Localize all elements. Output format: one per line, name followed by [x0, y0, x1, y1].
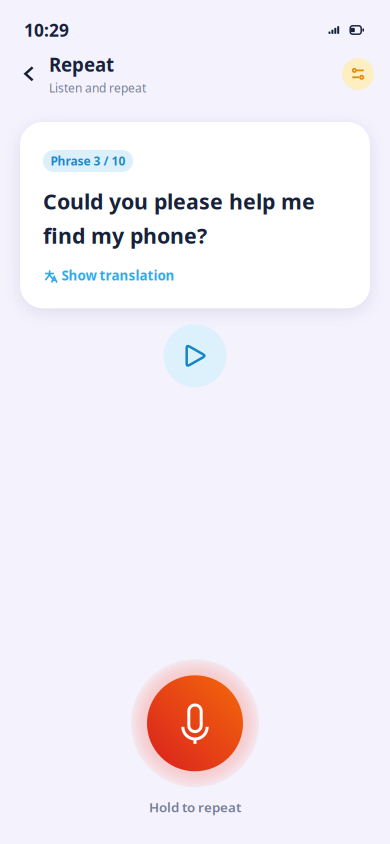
button[interactable]: Show translation: [43, 267, 174, 284]
button[interactable]: Play phrase: [163, 324, 226, 387]
staticText: Listen and repeat: [49, 80, 146, 96]
staticText: Hold to repeat: [149, 798, 241, 816]
staticText: Show translation: [61, 267, 174, 284]
staticText: Could you please help me find my phone?: [43, 187, 315, 250]
staticText: Phrase 3 / 10: [50, 153, 125, 169]
button[interactable]: Settings: [342, 58, 374, 90]
button[interactable]: Back: [16, 56, 42, 92]
button[interactable]: Hold to repeat: [131, 659, 259, 787]
staticText: Repeat: [49, 52, 114, 77]
staticText: 10:29: [24, 18, 69, 41]
